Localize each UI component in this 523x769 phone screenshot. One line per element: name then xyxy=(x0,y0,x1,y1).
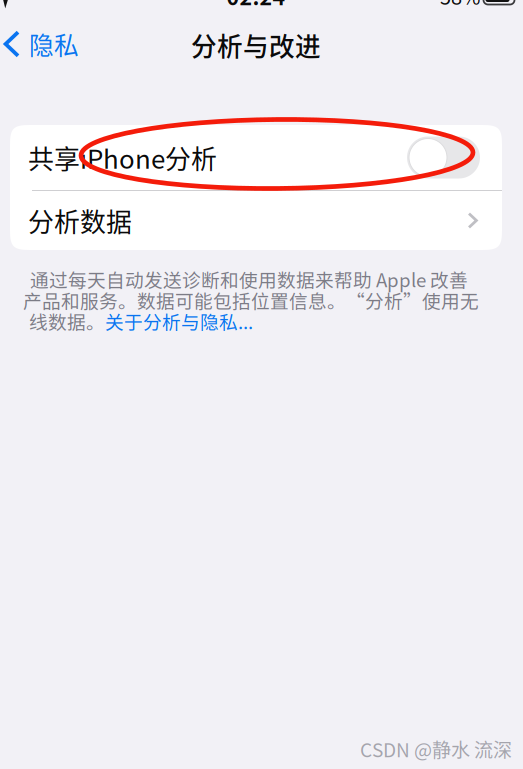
button[interactable]: 关于分析与隐私... xyxy=(105,307,253,334)
staticText: 关于分析与隐私... xyxy=(105,307,253,334)
staticText: 分析与改进 xyxy=(191,26,321,64)
staticText: 共享iPhone分析 xyxy=(28,139,217,176)
staticText: 产品和服务。数据可能包括位置信息。“分析”使用无 xyxy=(23,286,479,313)
button[interactable]: 共享iPhone分析 xyxy=(10,125,502,190)
button[interactable]: 隐私 xyxy=(0,18,84,70)
staticText: CSDN @静水 流深 xyxy=(360,735,512,763)
staticText: 02:24 xyxy=(226,0,285,11)
staticText: 通过每天自动发送诊断和使用数据来帮助 Apple 改善 xyxy=(30,265,468,292)
staticText: 隐私 xyxy=(29,26,79,62)
button[interactable]: 分析数据 xyxy=(10,191,502,250)
staticText: 分析数据 xyxy=(28,202,132,239)
staticText: 线数据。 xyxy=(29,307,105,334)
staticText: 58% xyxy=(440,0,480,10)
